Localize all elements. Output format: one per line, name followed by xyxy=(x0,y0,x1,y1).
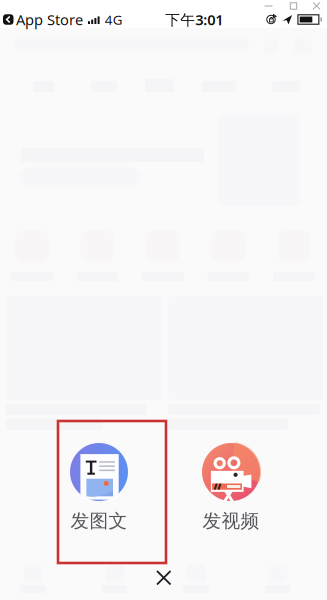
staticText: 下午3:01 xyxy=(165,10,223,29)
button[interactable]: Back to App Store xyxy=(3,10,83,29)
staticText: 发视频 xyxy=(202,509,259,532)
staticText: 4G xyxy=(105,11,123,28)
staticText: 发图文 xyxy=(70,509,127,532)
button[interactable]: Maximize xyxy=(281,0,306,11)
button[interactable]: 发视频 xyxy=(202,443,260,529)
button[interactable]: Close xyxy=(152,566,175,589)
button[interactable]: Close window xyxy=(306,0,327,11)
button[interactable]: 发图文 xyxy=(70,443,128,529)
button[interactable]: Minimize xyxy=(256,0,281,11)
staticText: App Store xyxy=(16,10,83,29)
